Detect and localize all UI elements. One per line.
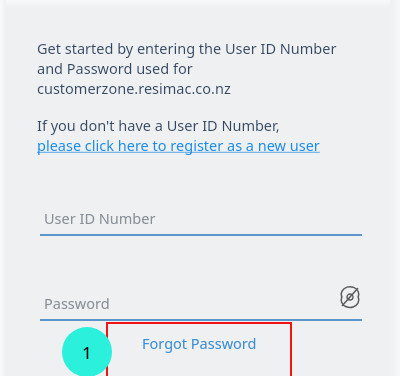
staticText: Forgot Password [142,333,257,353]
staticText: please click here to register as a new u… [37,135,320,155]
staticText: If you don't have a User ID Number, [37,115,280,135]
button[interactable]: please click here to register as a new u… [37,135,320,155]
button[interactable]: Show password [336,283,364,311]
staticText: User ID Number [44,208,156,228]
staticText: Password [44,293,110,313]
staticText: customerzone.resimac.co.nz [37,78,231,98]
staticText: 1 [82,341,92,364]
staticText: and Password used for [37,58,193,78]
button[interactable]: Password [40,285,362,321]
button[interactable]: 1 [62,327,112,376]
button[interactable]: Forgot Password [106,322,292,376]
staticText: Get started by entering the User ID Numb… [37,38,337,58]
button[interactable]: User ID Number [40,200,362,236]
